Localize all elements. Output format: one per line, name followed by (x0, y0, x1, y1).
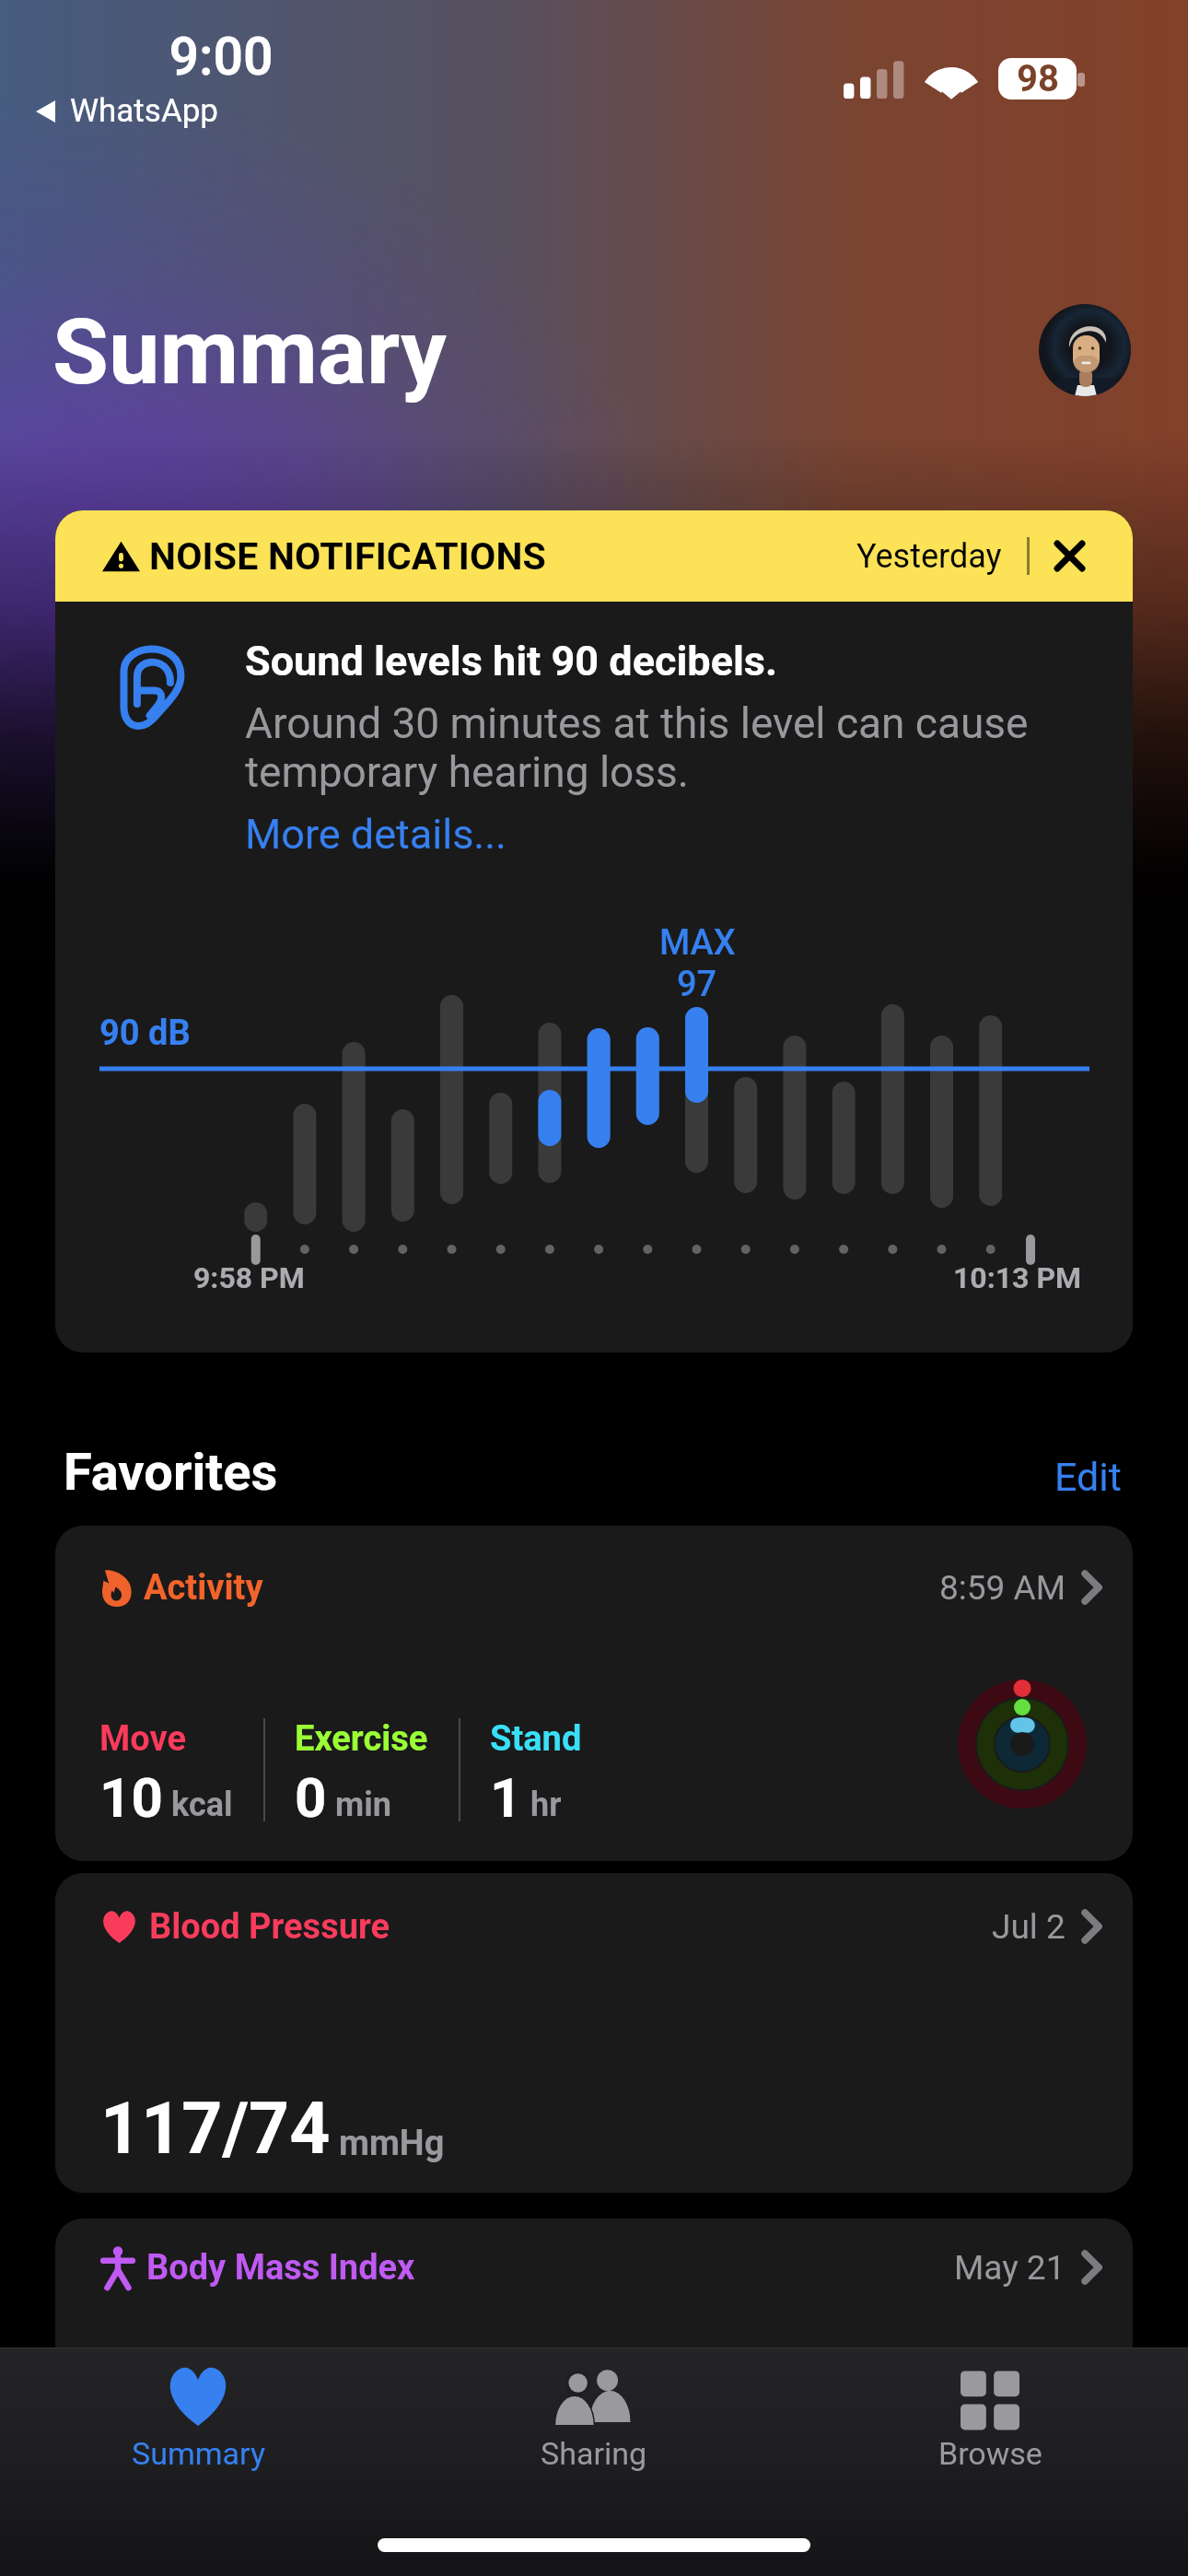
staticText: hr (530, 1786, 562, 1824)
staticText: Stand (490, 1718, 582, 1760)
button[interactable]: More details... (245, 810, 507, 859)
button[interactable]: Profile (1039, 304, 1131, 396)
staticText: kcal (171, 1786, 233, 1824)
button[interactable]: Activity (55, 1526, 1133, 1861)
staticText: 117/74 (100, 2088, 331, 2171)
staticText: Around 30 minutes at this level can caus… (245, 698, 1037, 797)
staticText: 8:59 AM (939, 1568, 1066, 1608)
staticText: WhatsApp (70, 92, 219, 130)
staticText: Favorites (64, 1442, 278, 1503)
staticText: Exercise (295, 1718, 428, 1760)
button[interactable]: Summary (0, 2348, 396, 2472)
button[interactable]: Edit (1054, 1454, 1122, 1500)
staticText: Browse (938, 2435, 1042, 2472)
button[interactable]: Browse (792, 2348, 1188, 2472)
staticText: mmHg (339, 2123, 445, 2164)
staticText: Sound levels hit 90 decibels. (245, 637, 778, 685)
staticText: min (335, 1786, 391, 1824)
button[interactable]: NOISE NOTIFICATIONS (55, 510, 1133, 1352)
staticText: Blood Pressure (149, 1906, 390, 1948)
staticText: Body Mass Index (146, 2247, 415, 2289)
staticText: May 21 (954, 2248, 1066, 2288)
button[interactable]: Back to WhatsApp (36, 92, 219, 130)
staticText: NOISE NOTIFICATIONS (149, 534, 546, 579)
staticText: 10 (99, 1765, 163, 1830)
staticText: Activity (144, 1567, 263, 1609)
staticText: Jul 2 (992, 1907, 1066, 1947)
staticText: Summary (132, 2435, 265, 2472)
staticText: 98 (1017, 58, 1059, 99)
staticText: 10:13 PM (953, 1260, 1082, 1295)
staticText: 0 (295, 1765, 327, 1830)
staticText: Yesterday (856, 537, 1002, 576)
staticText: Summary (52, 299, 447, 405)
button[interactable]: Blood Pressure (55, 1873, 1133, 2193)
staticText: 97 (677, 964, 717, 1005)
staticText: 90 dB (99, 1013, 191, 1054)
button[interactable]: Dismiss notification (1055, 542, 1084, 570)
staticText: 9:00 (74, 26, 368, 88)
staticText: Move (99, 1718, 186, 1760)
staticText: Sharing (541, 2435, 647, 2472)
button[interactable]: Sharing (396, 2348, 792, 2472)
staticText: 9:58 PM (193, 1260, 305, 1295)
staticText: 1 (490, 1765, 522, 1830)
button[interactable]: Body Mass Index (55, 2219, 1133, 2538)
staticText: MAX (659, 922, 736, 964)
